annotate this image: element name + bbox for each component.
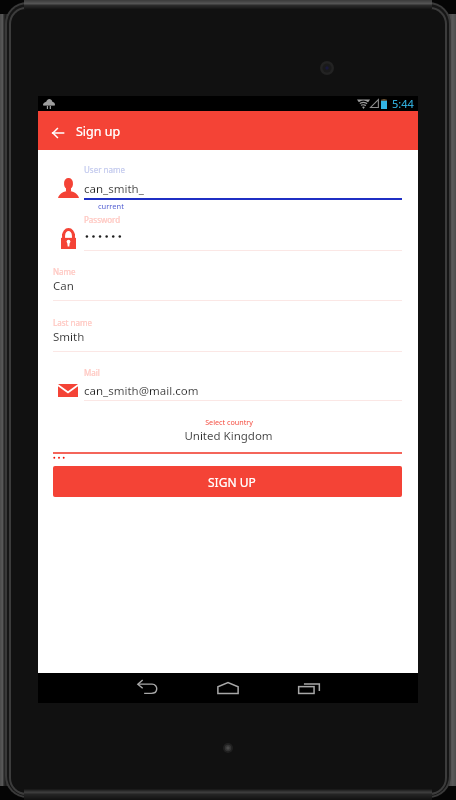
button[interactable] <box>38 263 418 301</box>
staticText: Mail <box>84 367 100 378</box>
button[interactable] <box>38 363 418 401</box>
staticText: can_smith_ <box>84 181 144 197</box>
staticText: Last name <box>53 317 92 328</box>
staticText: 5:44 <box>392 96 414 111</box>
staticText: Sign up <box>76 123 121 140</box>
button[interactable]: Home <box>206 673 250 703</box>
staticText: Smith <box>53 329 85 345</box>
staticText: Select country <box>205 417 253 427</box>
button[interactable] <box>38 314 418 352</box>
button[interactable] <box>38 160 418 212</box>
staticText: can_smith@mail.com <box>84 383 199 399</box>
button[interactable]: Recent apps <box>287 673 331 703</box>
staticText: United Kingdom <box>184 428 273 444</box>
button[interactable]: Select country <box>38 415 418 450</box>
button[interactable] <box>38 214 418 250</box>
staticText: Name <box>53 266 76 277</box>
staticText: Password <box>84 214 121 225</box>
button[interactable]: SIGN UP <box>53 466 402 497</box>
staticText: SIGN UP <box>208 474 256 490</box>
button[interactable]: Navigate up <box>44 113 72 152</box>
staticText: User name <box>84 164 125 175</box>
staticText: Can <box>53 278 74 294</box>
button[interactable]: Back <box>125 673 169 703</box>
staticText: current <box>98 201 124 211</box>
